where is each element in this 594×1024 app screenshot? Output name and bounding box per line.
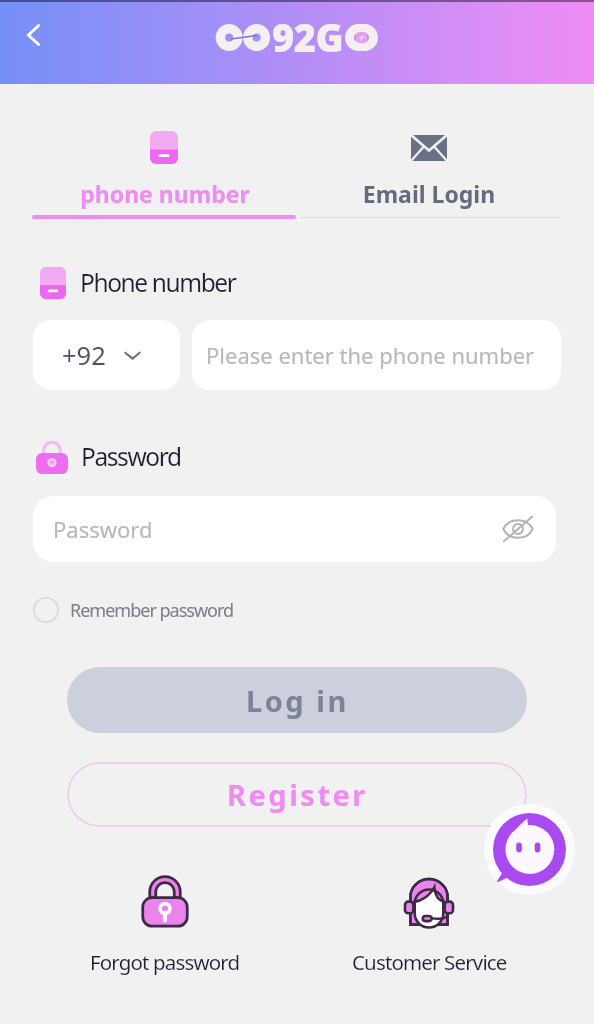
- staticText: Remember password: [70, 598, 234, 623]
- button[interactable]: Password: [33, 496, 556, 562]
- staticText: Password: [53, 514, 153, 544]
- staticText: Phone number: [80, 266, 236, 299]
- staticText: +92: [62, 338, 106, 373]
- button[interactable]: Forgot password: [33, 876, 297, 976]
- staticText: phone number: [33, 178, 297, 209]
- staticText: Please enter the phone number: [206, 340, 535, 370]
- staticText: Password: [81, 440, 181, 473]
- staticText: Forgot password: [90, 948, 240, 976]
- staticText: Customer Service: [352, 948, 507, 976]
- button[interactable]: Back: [11, 13, 55, 57]
- button[interactable]: Show password: [496, 507, 540, 551]
- staticText: Email Login: [297, 178, 561, 209]
- staticText: Log in: [246, 681, 349, 720]
- button[interactable]: phone number: [33, 100, 297, 220]
- staticText: 92G: [272, 11, 344, 63]
- button[interactable]: Customer Service: [297, 876, 561, 976]
- button[interactable]: Please enter the phone number: [192, 320, 561, 390]
- button[interactable]: Email Login: [297, 100, 561, 220]
- staticText: Register: [227, 775, 368, 814]
- button[interactable]: Register: [67, 762, 527, 827]
- button[interactable]: Customer support chat: [484, 804, 575, 895]
- button[interactable]: Remember password: [33, 595, 234, 625]
- button[interactable]: Log in: [67, 667, 527, 733]
- button[interactable]: +92: [33, 320, 180, 390]
